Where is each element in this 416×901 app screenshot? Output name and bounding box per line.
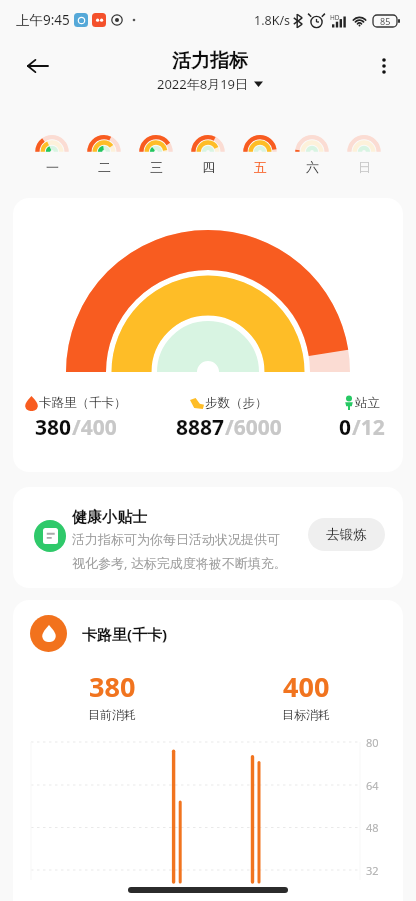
staticText: 0 [339, 413, 352, 442]
staticText: 六 [306, 159, 319, 175]
button[interactable]: 三 [130, 134, 182, 175]
staticText: 一 [46, 159, 59, 175]
staticText: 2022年8月19日 [157, 75, 249, 93]
staticText: 85 [380, 15, 391, 27]
button[interactable]: 四 [182, 134, 234, 175]
staticText: 活力指标可为你每日活动状况提供可 [72, 531, 280, 547]
staticText: 8887 [176, 413, 225, 442]
button[interactable]: 日 [338, 134, 390, 175]
staticText: 健康小贴士 [72, 508, 147, 527]
staticText: 视化参考, 达标完成度将被不断填充。 [72, 554, 287, 572]
staticText: 48 [366, 820, 379, 835]
staticText: 五 [254, 159, 267, 175]
staticText: 活力指标 [172, 49, 248, 73]
staticText: 卡路里（千卡） [39, 395, 127, 411]
button[interactable]: Back [18, 47, 56, 85]
button[interactable]: 去锻炼 [308, 518, 385, 551]
button[interactable]: 五 [234, 134, 286, 175]
staticText: 日 [358, 159, 371, 175]
staticText: HD [330, 13, 340, 22]
button[interactable]: 六 [286, 134, 338, 175]
staticText: 64 [366, 778, 379, 793]
staticText: 二 [98, 159, 111, 175]
staticText: 目标消耗 [282, 707, 330, 722]
staticText: 80 [366, 735, 379, 750]
staticText: 380 [89, 668, 136, 705]
staticText: /6000 [225, 413, 282, 442]
button[interactable]: More options [365, 47, 403, 85]
staticText: 去锻炼 [326, 526, 367, 543]
staticText: 380 [35, 413, 72, 442]
staticText: 步数（步） [205, 395, 268, 411]
staticText: /400 [72, 413, 117, 442]
staticText: 1.8K/s [254, 12, 291, 29]
staticText: 32 [366, 863, 379, 878]
staticText: 卡路里(千卡) [82, 624, 168, 644]
staticText: 四 [202, 159, 215, 175]
staticText: /12 [352, 413, 385, 442]
button[interactable]: 一 [26, 134, 78, 175]
button[interactable]: 二 [78, 134, 130, 175]
button[interactable]: 2022年8月19日 [157, 75, 263, 93]
staticText: 400 [283, 668, 330, 705]
staticText: 三 [150, 159, 163, 175]
staticText: 站立 [355, 395, 380, 411]
staticText: 目前消耗 [88, 707, 136, 722]
staticText: 上午9:45 [16, 11, 70, 29]
